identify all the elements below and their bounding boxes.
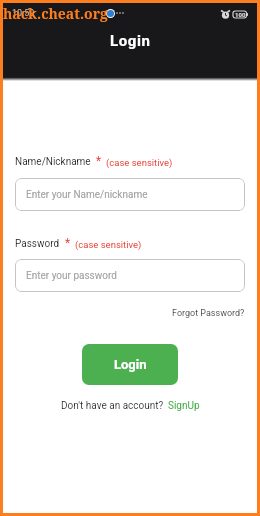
- staticText: Password: [15, 238, 60, 250]
- staticText: hack.cheat.org: [3, 4, 108, 23]
- staticText: Don't have an account?: [61, 400, 164, 412]
- button[interactable]: Forgot Password?: [172, 308, 245, 319]
- staticText: Login: [114, 357, 147, 372]
- button[interactable]: Enter your password: [15, 259, 245, 292]
- other: Battery 100 percent: [233, 11, 248, 18]
- other: Alarm: [221, 10, 230, 19]
- staticText: 10:59: [12, 8, 35, 19]
- button[interactable]: Enter your Name/nickname: [15, 178, 245, 211]
- staticText: SignUp: [168, 400, 200, 412]
- staticText: Forgot Password?: [172, 308, 245, 319]
- staticText: *: [65, 236, 71, 250]
- staticText: Enter your Name/nickname: [26, 189, 148, 201]
- button[interactable]: Login: [82, 344, 178, 385]
- staticText: Name/Nickname: [15, 156, 91, 168]
- staticText: (case sensitive): [106, 157, 173, 168]
- button[interactable]: SignUp: [168, 400, 200, 412]
- staticText: (case sensitive): [75, 239, 142, 250]
- staticText: 100: [235, 11, 246, 18]
- staticText: Enter your password: [26, 270, 117, 282]
- staticText: Login: [110, 32, 151, 50]
- staticText: *: [96, 154, 102, 168]
